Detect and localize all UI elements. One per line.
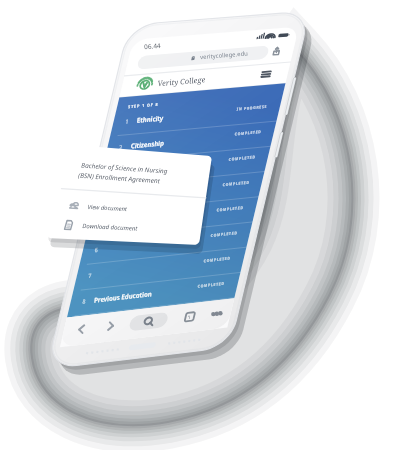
button[interactable]: Verity College enrollment form on phone (0, 0, 406, 450)
